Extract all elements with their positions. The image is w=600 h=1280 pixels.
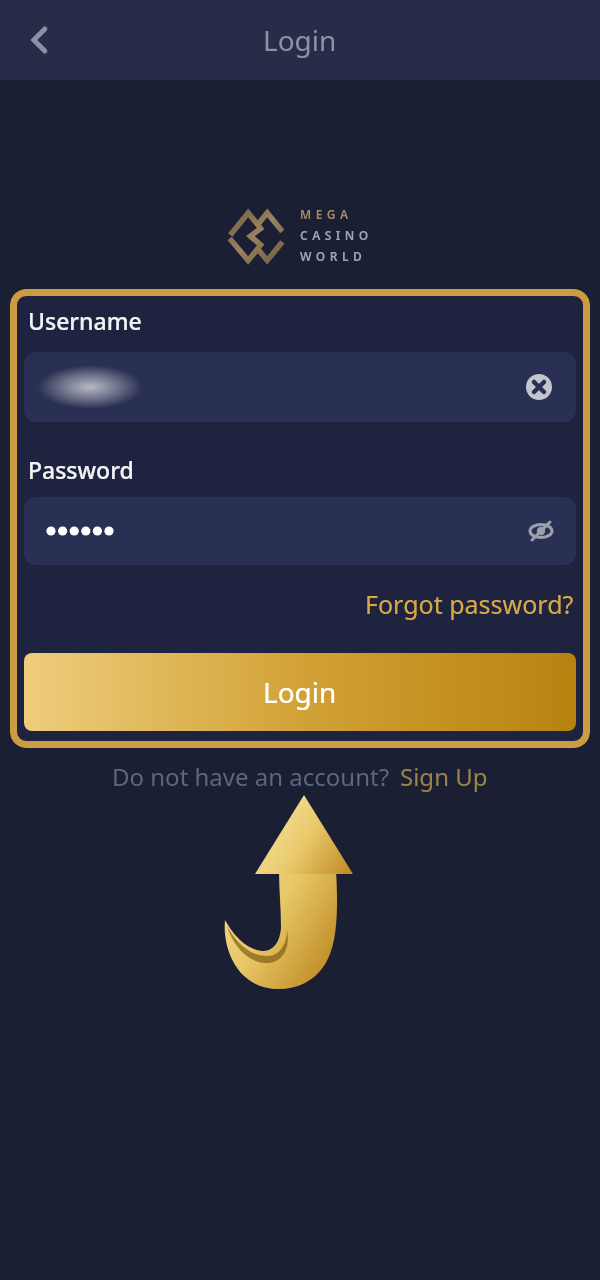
button[interactable]: Sign Up (400, 760, 488, 793)
staticText: MEGA (300, 206, 353, 222)
button[interactable] (24, 352, 576, 422)
staticText: WORLD (300, 248, 367, 264)
staticText: CASINO (300, 227, 373, 243)
staticText: Username (28, 305, 142, 336)
button[interactable]: Forgot password? (365, 587, 576, 621)
staticText: Password (28, 454, 134, 485)
staticText: Login (263, 673, 337, 711)
button[interactable] (18, 18, 62, 62)
staticText: Login (263, 21, 337, 59)
button[interactable]: Login (24, 653, 576, 731)
staticText: Forgot password? (365, 587, 574, 621)
staticText: Sign Up (400, 760, 488, 793)
button[interactable] (24, 497, 576, 565)
staticText: Do not have an account? (112, 760, 390, 793)
